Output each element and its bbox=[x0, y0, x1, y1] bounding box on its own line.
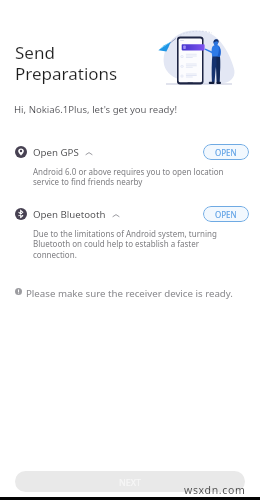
button[interactable]: OPEN bbox=[203, 206, 249, 222]
staticText: Due to the limitations of Android system… bbox=[33, 228, 229, 261]
staticText: Open GPS bbox=[33, 146, 79, 159]
staticText: Please make sure the receiver device is … bbox=[26, 287, 233, 300]
staticText: Open Bluetooth bbox=[33, 208, 106, 221]
staticText: OPEN bbox=[215, 209, 237, 220]
button[interactable]: NEXT bbox=[15, 471, 245, 492]
button[interactable]: OPEN bbox=[203, 144, 249, 160]
staticText: OPEN bbox=[215, 147, 237, 158]
staticText: Hi, Nokia6.1Plus, let's get you ready! bbox=[14, 103, 177, 116]
button[interactable]: Collapse bbox=[85, 150, 93, 158]
button[interactable]: Collapse bbox=[112, 212, 120, 220]
staticText: Send Preparations bbox=[15, 41, 118, 85]
staticText: wsxdn.com bbox=[184, 483, 246, 497]
staticText: Android 6.0 or above requires you to ope… bbox=[33, 166, 229, 188]
staticText: NEXT bbox=[119, 476, 142, 488]
